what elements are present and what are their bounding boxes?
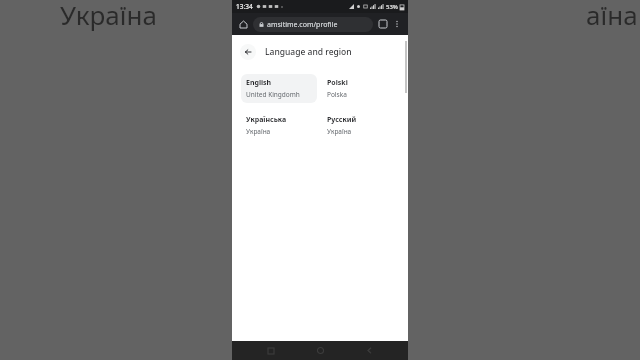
staticText: United Kingdomh xyxy=(246,90,300,99)
staticText: Language and region xyxy=(265,46,352,58)
button[interactable]: amsitime.com/profile xyxy=(253,17,373,32)
button[interactable]: Русский xyxy=(322,111,399,140)
button[interactable]: More options xyxy=(391,18,403,30)
button[interactable]: Back xyxy=(240,44,256,60)
staticText: Русский xyxy=(327,115,357,125)
staticText: 53% xyxy=(386,3,398,11)
button[interactable]: Recent apps xyxy=(261,341,281,360)
staticText: Україна xyxy=(60,0,157,32)
button[interactable]: Home xyxy=(310,341,330,360)
staticText: Polski xyxy=(327,78,348,88)
staticText: Polska xyxy=(327,90,347,99)
staticText: Україна xyxy=(246,127,271,136)
staticText: аїна xyxy=(586,0,638,32)
button[interactable]: Polski xyxy=(322,74,399,103)
button[interactable]: Home xyxy=(237,18,250,31)
staticText: Українська xyxy=(246,115,287,125)
staticText: Україна xyxy=(327,127,352,136)
staticText: English xyxy=(246,78,272,88)
button[interactable]: Tabs xyxy=(377,18,389,30)
button[interactable]: Back xyxy=(359,341,379,360)
button[interactable]: Українська xyxy=(241,111,317,140)
button[interactable]: English xyxy=(241,74,317,103)
staticText: 13:34 xyxy=(236,2,253,11)
staticText: amsitime.com/profile xyxy=(267,20,338,30)
